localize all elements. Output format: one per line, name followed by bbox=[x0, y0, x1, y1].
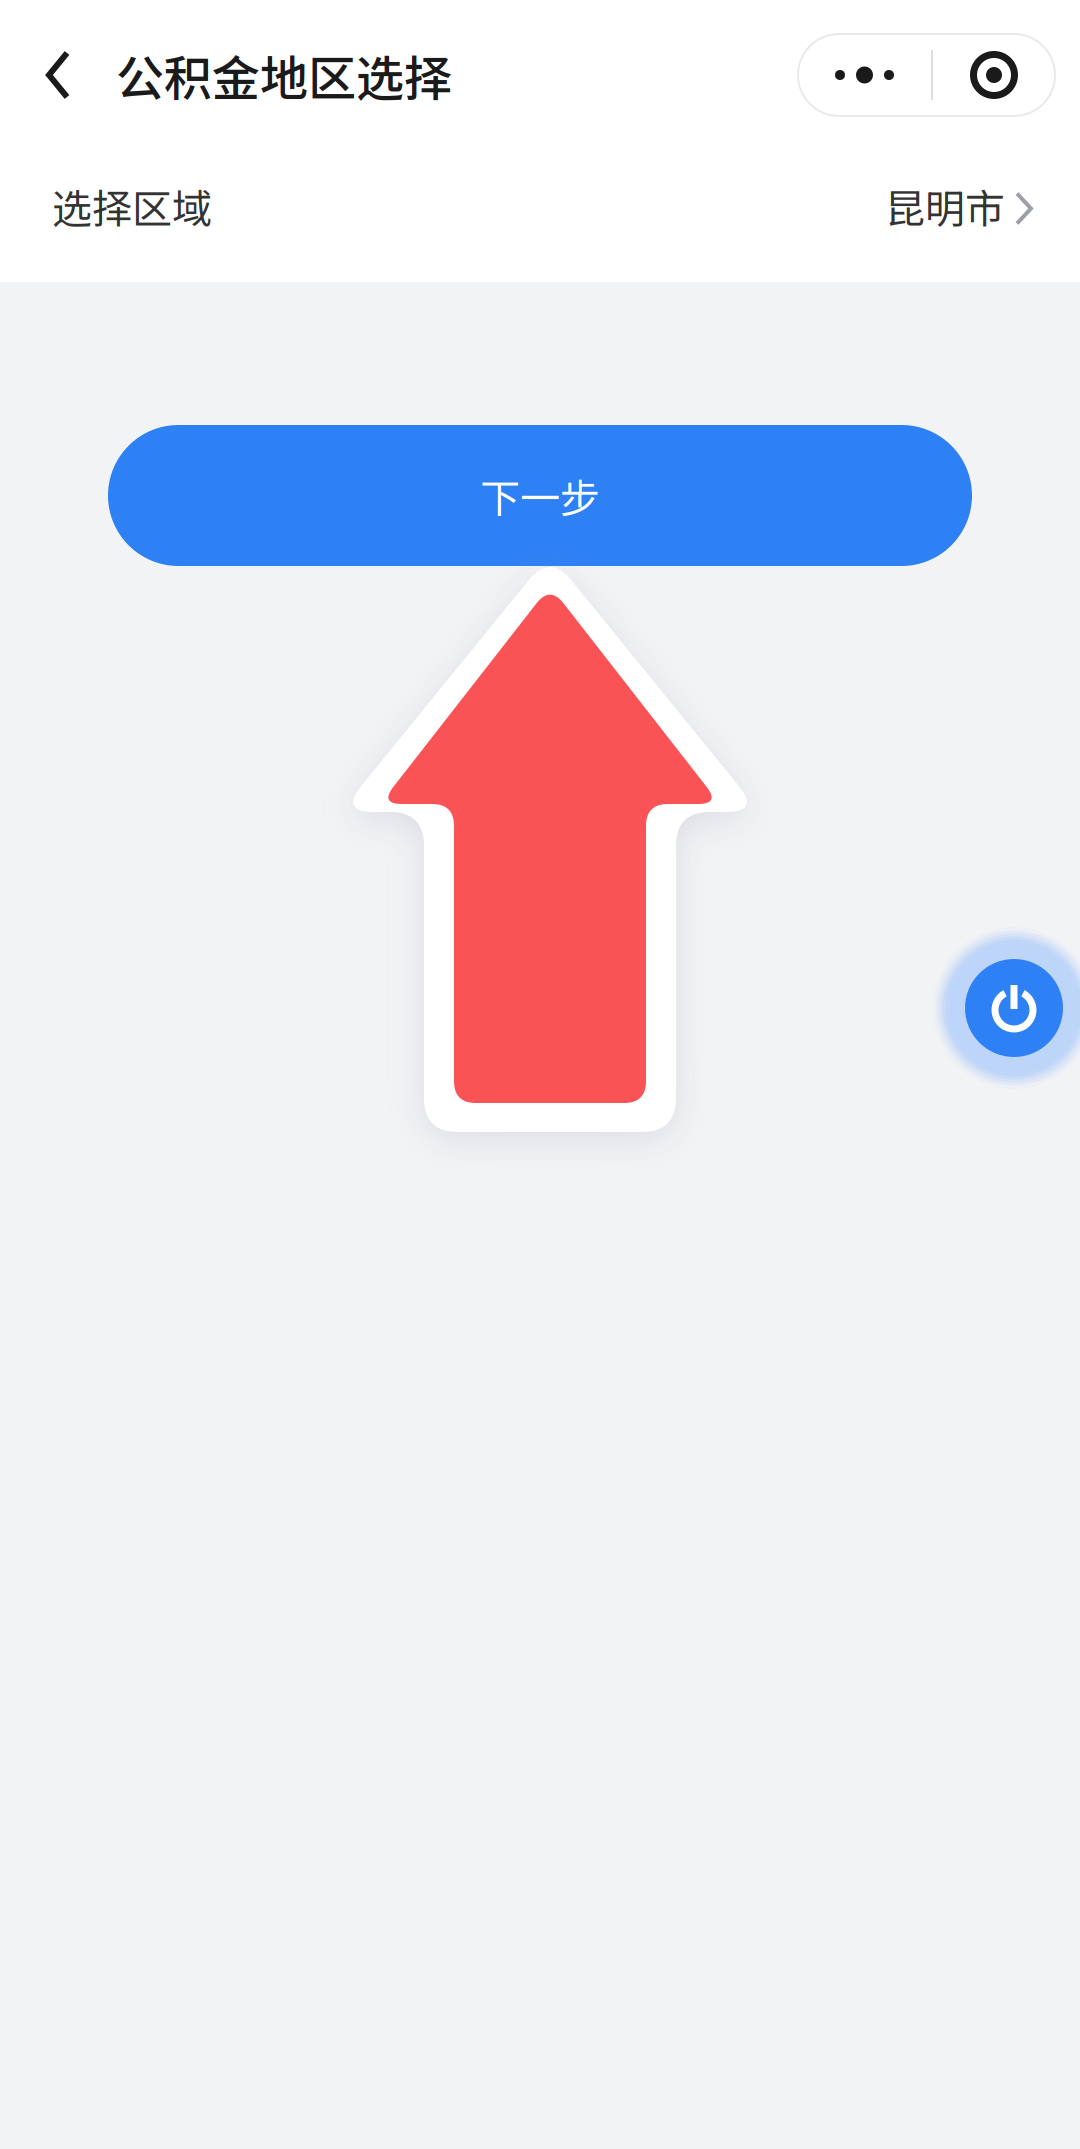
button[interactable]: 下一步 bbox=[108, 425, 972, 566]
staticText: 选择区域 bbox=[52, 177, 212, 235]
button[interactable]: Back bbox=[46, 0, 116, 150]
button[interactable]: Power bbox=[941, 935, 1080, 1081]
staticText: 昆明市 bbox=[885, 177, 1005, 235]
staticText: 下一步 bbox=[480, 466, 600, 524]
staticText: 公积金地区选择 bbox=[116, 40, 452, 110]
button[interactable]: 选择区域 bbox=[0, 140, 1080, 272]
button[interactable]: More options bbox=[798, 34, 1055, 116]
